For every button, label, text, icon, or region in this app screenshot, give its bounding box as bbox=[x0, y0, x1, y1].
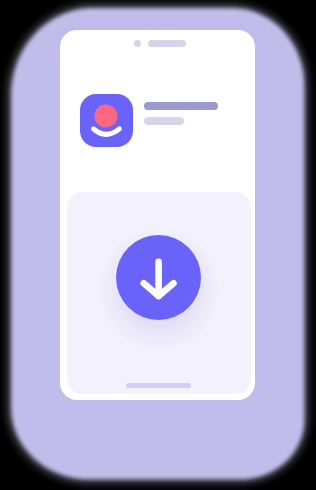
button[interactable]: Download bbox=[116, 235, 201, 320]
button[interactable]: Home indicator bbox=[126, 383, 191, 388]
button[interactable]: App icon bbox=[80, 94, 133, 147]
